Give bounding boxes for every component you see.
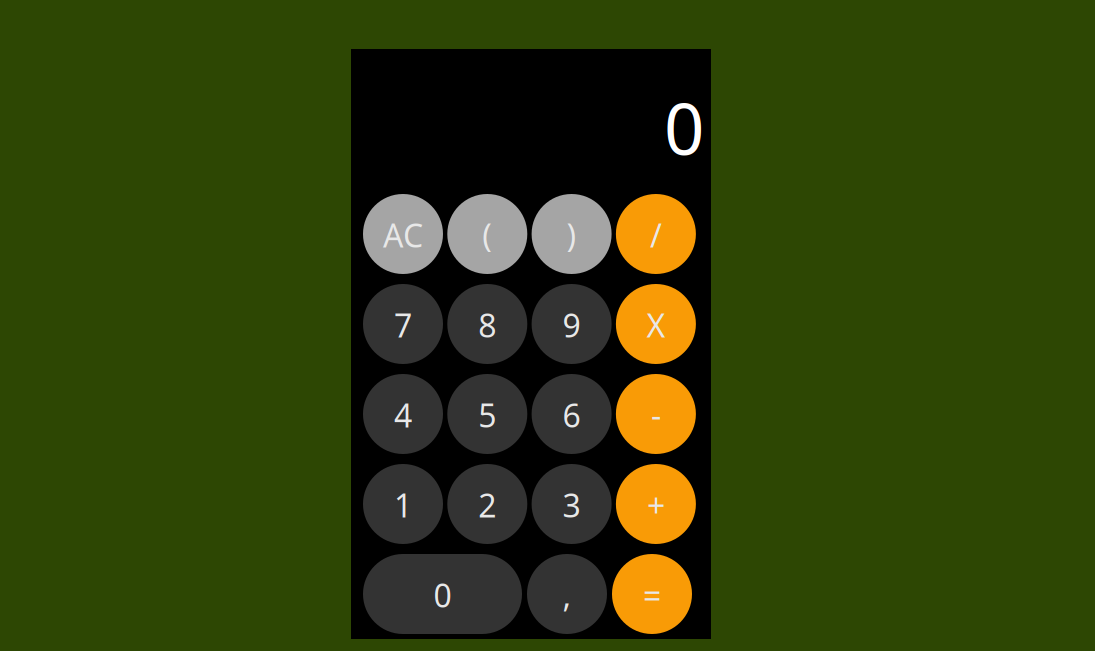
staticText: 9	[563, 304, 581, 346]
staticText: =	[643, 574, 661, 616]
button[interactable]: 4	[363, 374, 443, 454]
button[interactable]: Equals	[612, 554, 692, 634]
staticText: X	[646, 304, 665, 346]
staticText: (	[482, 214, 492, 256]
button[interactable]: 8	[447, 284, 527, 364]
staticText: 2	[478, 484, 496, 526]
button[interactable]: 9	[532, 284, 612, 364]
button[interactable]: 3	[532, 464, 612, 544]
button[interactable]: 5	[447, 374, 527, 454]
button[interactable]: Minus	[616, 374, 696, 454]
staticText: ,	[562, 574, 571, 616]
button[interactable]: 0	[363, 554, 522, 634]
staticText: /	[650, 214, 662, 256]
button[interactable]: 1	[363, 464, 443, 544]
staticText: 5	[478, 394, 496, 436]
button[interactable]: All clear	[363, 194, 443, 274]
staticText: 1	[394, 484, 412, 526]
staticText: 0	[664, 81, 704, 174]
staticText: AC	[383, 214, 423, 256]
button[interactable]: 6	[532, 374, 612, 454]
staticText: 3	[563, 484, 581, 526]
staticText: +	[647, 484, 665, 526]
staticText: 6	[563, 394, 581, 436]
staticText: 8	[478, 304, 496, 346]
button[interactable]: Decimal separator	[527, 554, 607, 634]
button[interactable]: Plus	[616, 464, 696, 544]
staticText: 7	[394, 304, 412, 346]
staticText: 0	[433, 574, 451, 616]
button[interactable]: Divide	[616, 194, 696, 274]
button[interactable]: Multiply	[616, 284, 696, 364]
staticText: )	[567, 214, 577, 256]
button[interactable]: Open parenthesis	[447, 194, 527, 274]
button[interactable]: 2	[447, 464, 527, 544]
button[interactable]: Close parenthesis	[532, 194, 612, 274]
button[interactable]: 7	[363, 284, 443, 364]
staticText: -	[651, 394, 661, 436]
staticText: 4	[394, 394, 412, 436]
